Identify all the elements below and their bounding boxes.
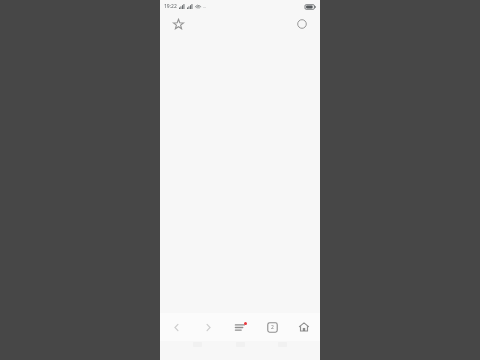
staticText: 2 — [271, 324, 274, 331]
button[interactable]: Bookmark — [169, 15, 187, 33]
button[interactable]: Home — [288, 313, 320, 341]
staticText: 19:22 — [164, 3, 177, 10]
button[interactable]: Reload — [293, 15, 311, 33]
staticText: ... — [203, 4, 207, 9]
button[interactable]: Back — [160, 313, 192, 341]
button[interactable]: Tabs — [256, 313, 288, 341]
button[interactable]: Menu — [224, 313, 256, 341]
button[interactable]: Forward — [192, 313, 224, 341]
